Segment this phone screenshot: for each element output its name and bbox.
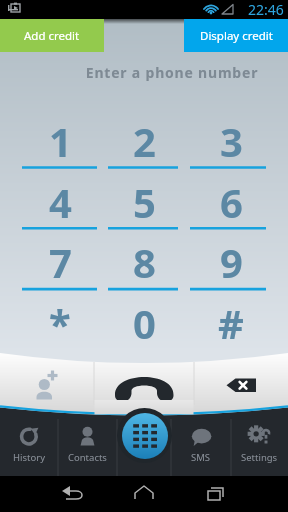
staticText: 4 <box>49 175 72 229</box>
button[interactable]: 3 <box>200 111 262 172</box>
button[interactable]: 6 <box>200 172 262 233</box>
button[interactable]: 8 <box>113 232 175 293</box>
staticText: 1 <box>49 114 72 168</box>
staticText: 5 <box>133 175 156 229</box>
staticText: 7 <box>49 235 72 289</box>
button[interactable]: 9 <box>200 232 262 293</box>
staticText: History <box>13 451 45 464</box>
button[interactable]: 7 <box>29 232 91 293</box>
button[interactable]: * <box>29 293 91 354</box>
staticText: 2 <box>133 114 156 168</box>
staticText: Display credit <box>200 28 273 44</box>
button[interactable]: Contacts <box>58 414 117 476</box>
staticText: 8 <box>133 235 156 289</box>
button[interactable]: Add contact <box>0 357 94 405</box>
staticText: * <box>49 296 71 350</box>
staticText: Enter a phone number <box>28 63 288 82</box>
staticText: 9 <box>220 235 243 289</box>
button[interactable]: Backspace <box>194 357 288 405</box>
staticText: Settings <box>241 451 278 464</box>
button[interactable]: 1 <box>29 111 91 172</box>
staticText: 6 <box>220 175 243 229</box>
button[interactable]: 2 <box>113 111 175 172</box>
button[interactable]: 0 <box>113 293 175 354</box>
staticText: 0 <box>133 296 156 350</box>
staticText: Add credit <box>24 28 80 44</box>
button[interactable]: # <box>200 293 262 354</box>
staticText: 22:46 <box>248 0 284 19</box>
staticText: SMS <box>191 451 211 464</box>
button[interactable]: SMS <box>171 414 231 476</box>
staticText: 3 <box>220 114 243 168</box>
button[interactable]: 4 <box>29 172 91 233</box>
button[interactable]: History <box>0 414 58 476</box>
button[interactable]: Settings <box>231 414 288 476</box>
button[interactable]: Add credit <box>0 19 104 52</box>
button[interactable]: 5 <box>113 172 175 233</box>
staticText: # <box>218 296 244 350</box>
staticText: Contacts <box>68 451 107 464</box>
button[interactable]: Display credit <box>184 19 288 52</box>
button[interactable]: Dialpad <box>117 408 172 463</box>
button[interactable]: Call <box>94 357 194 405</box>
